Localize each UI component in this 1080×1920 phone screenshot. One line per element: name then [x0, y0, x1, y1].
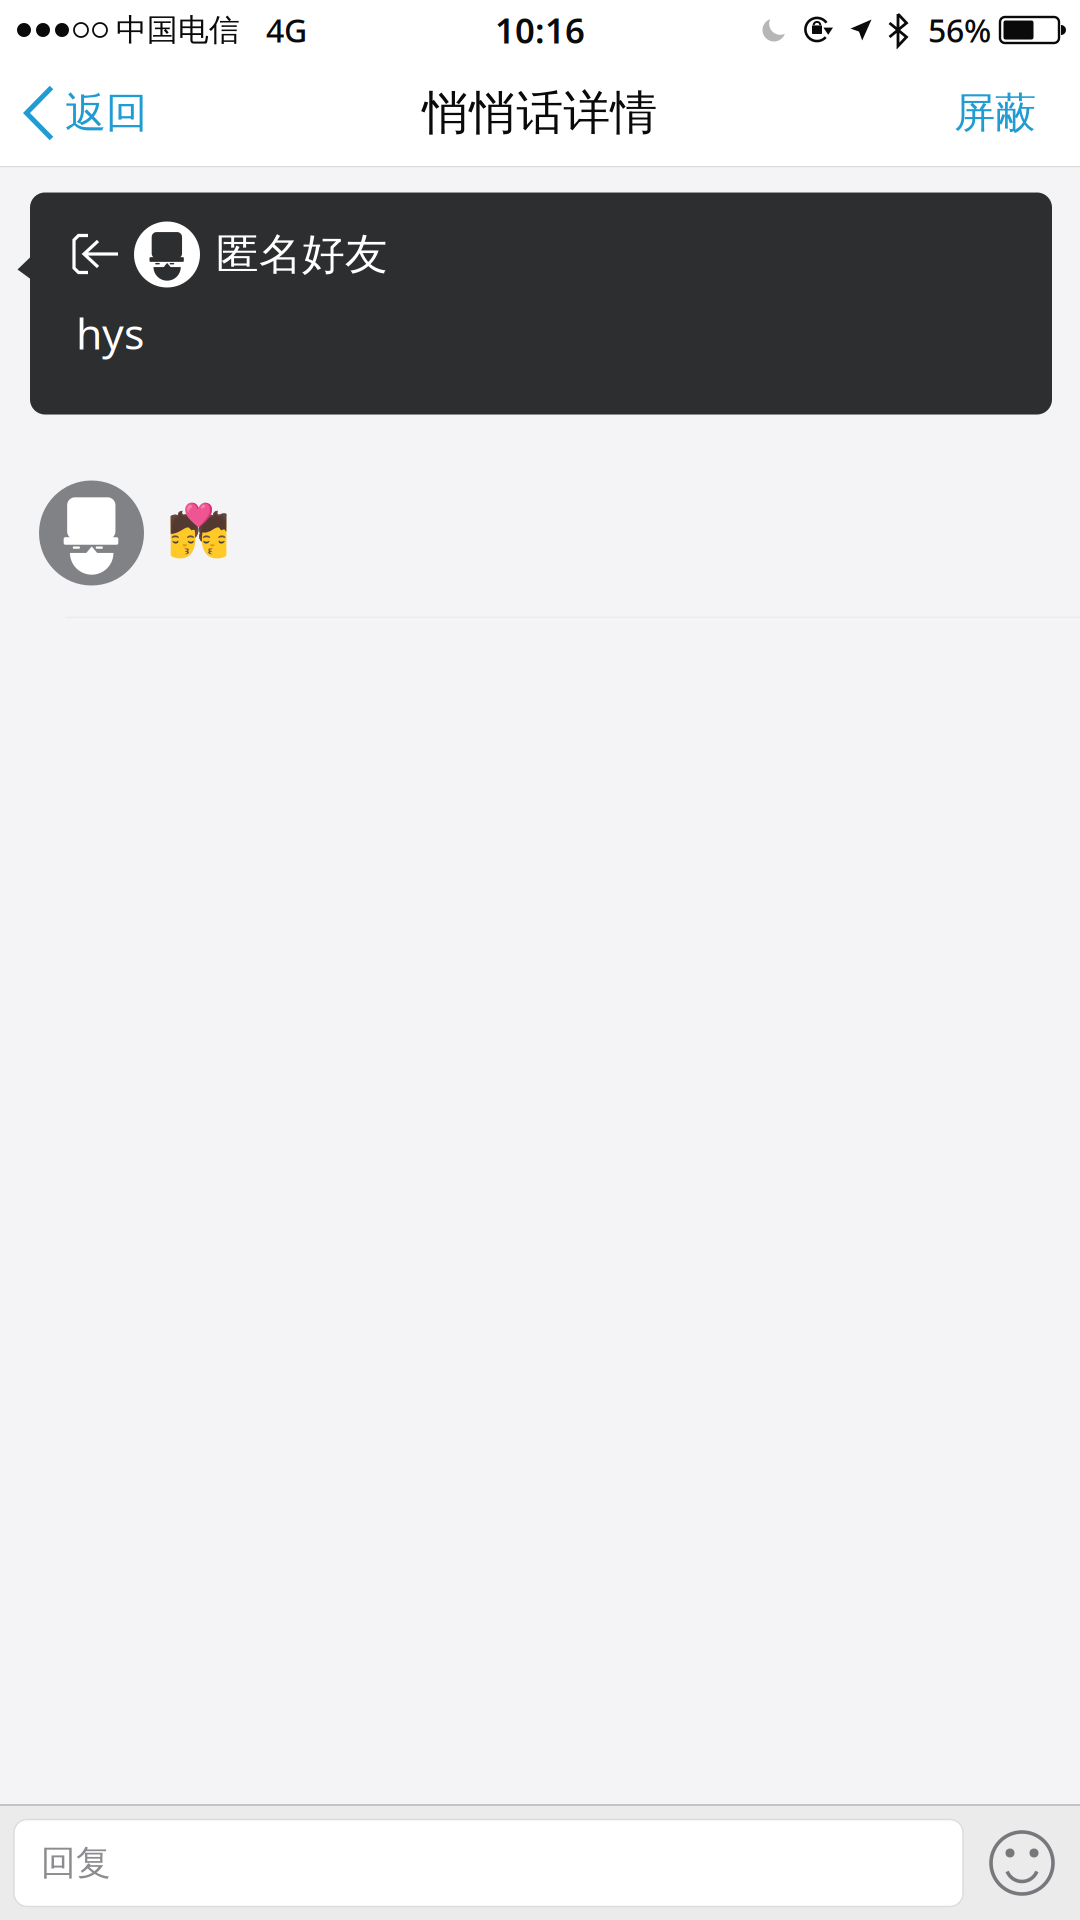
staticText: 56%: [928, 9, 991, 51]
staticText: 10:16: [495, 7, 585, 53]
staticText: 回复: [41, 1842, 111, 1884]
staticText: 4G: [266, 9, 307, 51]
button[interactable]: 匿名好友: [30, 192, 1052, 414]
staticText: 返回: [65, 88, 147, 138]
staticText: 💏: [167, 501, 230, 559]
staticText: 匿名好友: [216, 228, 388, 281]
button[interactable]: 屏蔽: [934, 60, 1080, 166]
button[interactable]: Emoji: [964, 1819, 1080, 1906]
button[interactable]: 回复: [14, 1819, 963, 1906]
staticText: 悄悄话详情: [422, 84, 657, 142]
button[interactable]: 💏: [0, 480, 1080, 585]
staticText: 屏蔽: [954, 88, 1036, 138]
staticText: 中国电信: [116, 11, 240, 49]
button[interactable]: 返回: [0, 60, 167, 166]
staticText: hys: [76, 304, 144, 361]
